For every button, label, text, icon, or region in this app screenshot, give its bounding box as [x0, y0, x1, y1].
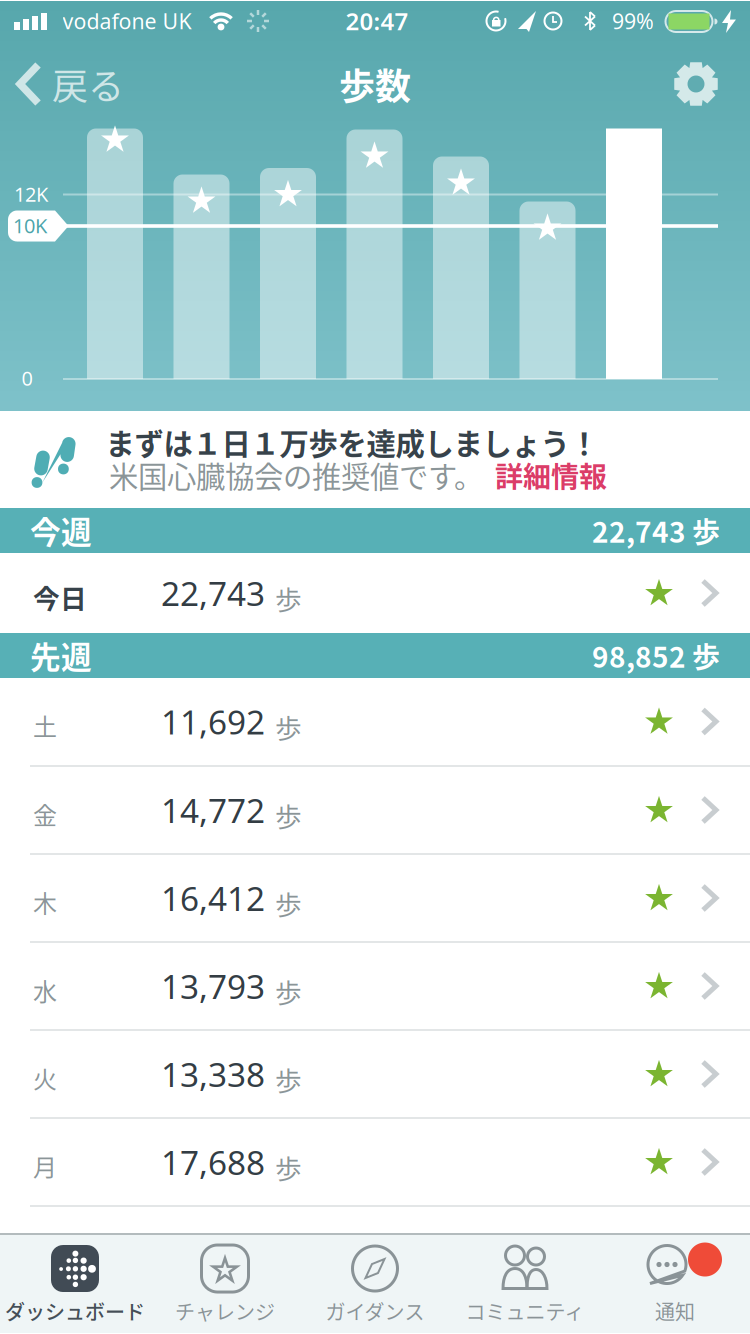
- staticText: 歩: [275, 1060, 302, 1098]
- staticText: 歩: [275, 796, 302, 834]
- staticText: 詳細情報: [495, 455, 607, 495]
- button[interactable]: 今日: [0, 553, 750, 633]
- button[interactable]: コミュニティ: [450, 1237, 600, 1331]
- staticText: 歩: [275, 579, 302, 617]
- staticText: 水: [33, 973, 57, 1007]
- staticText: 歩: [275, 1148, 302, 1186]
- staticText: 木: [33, 885, 57, 919]
- staticText: 通知: [655, 1296, 695, 1325]
- button[interactable]: 詳細情報: [495, 455, 607, 495]
- staticText: 戻る: [52, 58, 124, 110]
- button[interactable]: 設定: [673, 61, 719, 107]
- staticText: 先週: [30, 633, 92, 678]
- staticText: 16,412: [161, 876, 265, 920]
- staticText: 歩: [275, 884, 302, 922]
- staticText: チャレンジ: [175, 1296, 275, 1325]
- button[interactable]: 火: [0, 1031, 750, 1117]
- staticText: 月: [33, 1149, 57, 1183]
- staticText: 13,338: [161, 1052, 265, 1096]
- button[interactable]: 木: [0, 855, 750, 941]
- staticText: 0: [21, 365, 32, 391]
- staticText: ダッシュボード: [5, 1296, 145, 1325]
- staticText: コミュニティ: [465, 1296, 584, 1325]
- staticText: まずは１日１万歩を達成しましょう！: [105, 421, 598, 463]
- staticText: vodafone UK: [62, 7, 191, 35]
- staticText: 12K: [14, 181, 48, 207]
- staticText: 98,852 歩: [592, 635, 720, 676]
- staticText: 22,743: [161, 571, 265, 615]
- staticText: 今週: [30, 508, 92, 553]
- button[interactable]: 金: [0, 767, 750, 853]
- button[interactable]: 戻る: [16, 56, 176, 112]
- button[interactable]: 通知: [600, 1237, 750, 1331]
- staticText: 22,743 歩: [592, 510, 720, 551]
- staticText: 歩数: [339, 58, 411, 110]
- staticText: 13,793: [161, 964, 265, 1008]
- staticText: 歩: [275, 972, 302, 1010]
- staticText: 歩: [275, 707, 302, 746]
- staticText: 99%: [612, 7, 654, 35]
- staticText: 14,772: [161, 788, 265, 832]
- staticText: 10K: [13, 212, 47, 239]
- button[interactable]: チャレンジ: [150, 1237, 300, 1331]
- staticText: 火: [33, 1061, 57, 1095]
- button[interactable]: 月: [0, 1119, 750, 1205]
- staticText: 11,692: [161, 699, 265, 744]
- staticText: 土: [33, 708, 57, 743]
- button[interactable]: ガイダンス: [300, 1237, 450, 1331]
- button[interactable]: ダッシュボード: [0, 1237, 150, 1331]
- button[interactable]: 土: [0, 678, 750, 765]
- staticText: 金: [33, 797, 57, 831]
- button[interactable]: 水: [0, 943, 750, 1029]
- staticText: 今日: [33, 578, 87, 616]
- staticText: 米国心臓協会の推奨値です。: [109, 454, 483, 496]
- staticText: ガイダンス: [325, 1296, 424, 1325]
- staticText: 17,688: [161, 1140, 265, 1184]
- staticText: 20:47: [345, 5, 408, 37]
